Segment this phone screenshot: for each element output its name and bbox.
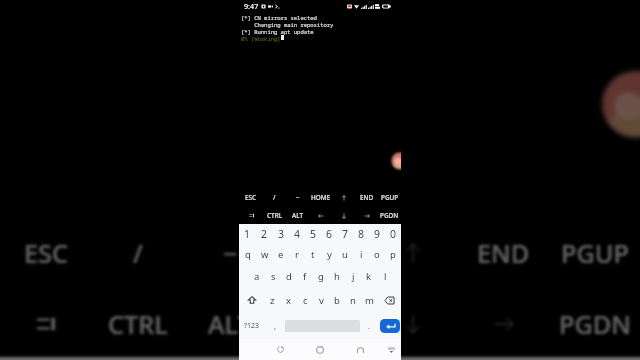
button[interactable]: Back	[340, 339, 381, 360]
button[interactable]: f	[297, 265, 313, 288]
button[interactable]: Backspace	[377, 288, 401, 312]
button[interactable]: PGUP	[549, 215, 640, 290]
button[interactable]: Left	[276, 290, 367, 357]
button[interactable]: a	[248, 265, 265, 288]
button[interactable]: h	[329, 265, 345, 288]
button[interactable]: 8	[448, 357, 512, 360]
button[interactable]: b	[329, 288, 345, 312]
button[interactable]: w	[256, 244, 273, 265]
staticText: Changing main repository	[241, 21, 334, 28]
button[interactable]: 0	[385, 224, 401, 244]
button[interactable]: −	[184, 215, 276, 290]
button[interactable]: c	[297, 288, 313, 312]
staticText: −	[296, 193, 300, 202]
button[interactable]: 5	[305, 224, 321, 244]
staticText: HOME	[284, 236, 360, 270]
button[interactable]: END	[355, 188, 378, 207]
button[interactable]: 0	[576, 357, 640, 360]
button[interactable]: Enter	[380, 319, 400, 333]
button[interactable]: −	[286, 188, 309, 207]
button[interactable]: Rotate screen	[260, 339, 300, 360]
button[interactable]: ESC	[239, 188, 263, 207]
button[interactable]: Shift	[239, 288, 264, 312]
button[interactable]: s	[265, 265, 281, 288]
button[interactable]: Up	[332, 188, 355, 207]
button[interactable]: k	[361, 265, 377, 288]
button[interactable]: Tab	[239, 207, 263, 224]
button[interactable]: l	[377, 265, 393, 288]
button[interactable]: n	[345, 288, 361, 312]
button[interactable]: Up	[367, 215, 458, 290]
button[interactable]: 1	[239, 224, 256, 244]
button[interactable]: 8	[353, 224, 369, 244]
button[interactable]: v	[313, 288, 329, 312]
button[interactable]: 9	[512, 357, 576, 360]
button[interactable]: 1	[0, 357, 64, 360]
button[interactable]: 2	[64, 357, 128, 360]
button[interactable]: i	[353, 244, 369, 265]
button[interactable]: END	[458, 215, 549, 290]
button[interactable]: Down	[367, 290, 458, 357]
button[interactable]: g	[313, 265, 329, 288]
button[interactable]: 4	[192, 357, 256, 360]
button[interactable]: 9	[369, 224, 385, 244]
button[interactable]: /	[263, 188, 286, 207]
button[interactable]: t	[305, 244, 321, 265]
button[interactable]: 6	[321, 224, 337, 244]
button[interactable]: PGUP	[378, 188, 401, 207]
button[interactable]: PGDN	[378, 207, 401, 224]
staticText: x	[286, 294, 292, 307]
button[interactable]: /	[92, 215, 184, 290]
button[interactable]: HOME	[309, 188, 332, 207]
button[interactable]: 4	[289, 224, 305, 244]
button[interactable]: Down	[332, 207, 355, 224]
button[interactable]: ALT	[184, 290, 276, 357]
button[interactable]: Home	[300, 339, 340, 360]
button[interactable]: CTRL	[92, 290, 184, 357]
staticText: ALT	[292, 211, 304, 220]
button[interactable]: ESC	[0, 215, 92, 290]
button[interactable]: ALT	[286, 207, 309, 224]
button[interactable]: p	[385, 244, 401, 265]
button[interactable]: .	[360, 312, 378, 339]
button[interactable]: 7	[384, 357, 448, 360]
button[interactable]: ,	[265, 312, 285, 339]
button[interactable]: q	[239, 244, 256, 265]
button[interactable]: y	[321, 244, 337, 265]
button[interactable]: x	[281, 288, 297, 312]
button[interactable]: Tab	[0, 290, 92, 357]
staticText: q	[245, 248, 251, 261]
button[interactable]: CTRL	[263, 207, 286, 224]
staticText: y	[327, 248, 332, 261]
button[interactable]: 3	[273, 224, 289, 244]
button[interactable]: d	[281, 265, 297, 288]
button[interactable]: PGDN	[549, 290, 640, 357]
staticText: 7	[342, 227, 349, 241]
button[interactable]: j	[345, 265, 361, 288]
staticText: ALT	[208, 307, 252, 341]
button[interactable]: ?123	[239, 312, 265, 339]
button[interactable]: e	[273, 244, 289, 265]
staticText: END	[477, 236, 530, 270]
staticText: a	[254, 270, 260, 283]
staticText: PGDN	[380, 211, 399, 220]
button[interactable]: z	[264, 288, 281, 312]
button[interactable]: 7	[337, 224, 353, 244]
button[interactable]: 2	[256, 224, 273, 244]
button[interactable]: Right	[458, 290, 549, 357]
staticText: b	[334, 294, 340, 307]
button[interactable]: Left	[309, 207, 332, 224]
button[interactable]	[285, 312, 360, 339]
staticText: [*] CN mirrors selected	[241, 14, 317, 21]
button[interactable]: HOME	[276, 215, 367, 290]
button[interactable]: r	[289, 244, 305, 265]
button[interactable]: 3	[128, 357, 192, 360]
button[interactable]: u	[337, 244, 353, 265]
staticText: /	[133, 236, 143, 270]
button[interactable]: o	[369, 244, 385, 265]
button[interactable]: Hide keyboard	[381, 339, 401, 360]
button[interactable]: Right	[355, 207, 378, 224]
button[interactable]: m	[361, 288, 377, 312]
